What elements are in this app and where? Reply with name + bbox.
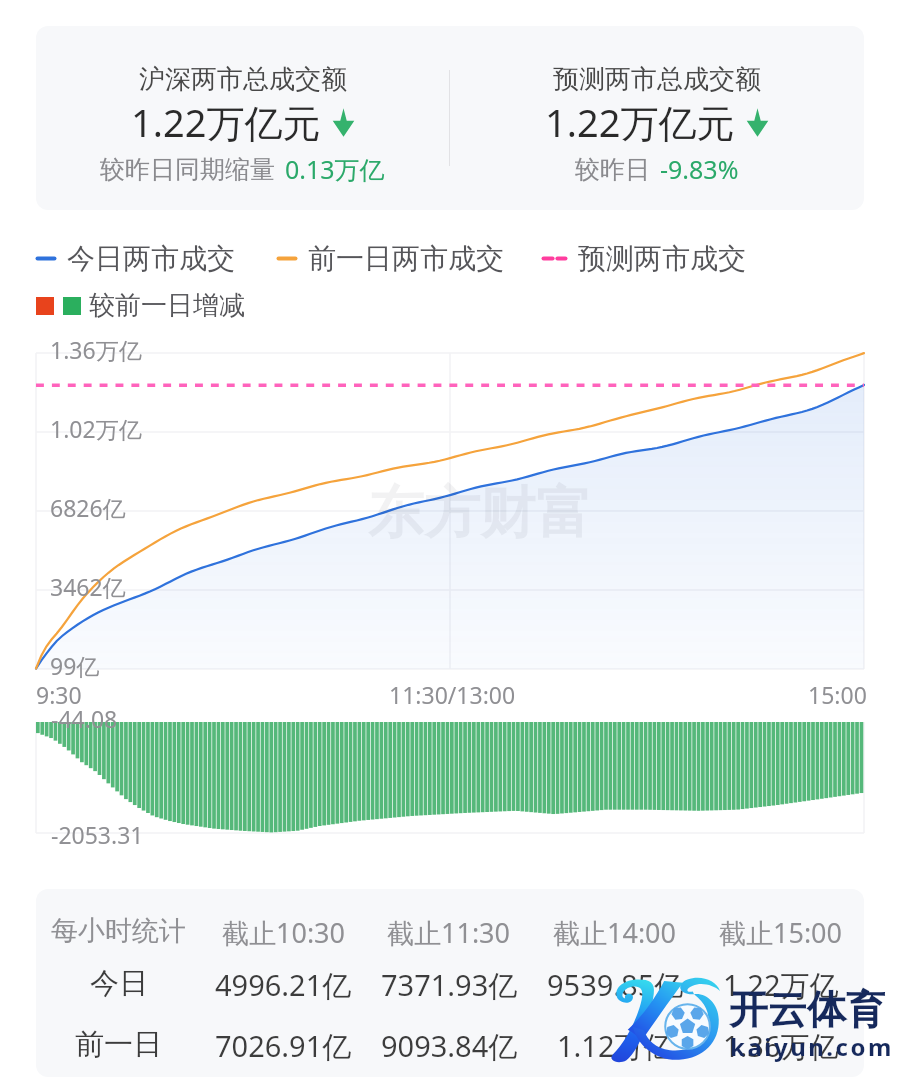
staticText: 前一日 (75, 1026, 162, 1063)
staticText: 3462亿 (50, 571, 126, 602)
button[interactable]: 沪深两市总成交额 (36, 26, 864, 210)
staticText: -2053.31 (51, 819, 144, 850)
staticText: 1.12万亿 (557, 1026, 673, 1066)
staticText: 1.22万亿元 (545, 96, 735, 148)
staticText: 东方财富 (368, 478, 592, 549)
button[interactable]: 前一日两市成交 (277, 241, 504, 276)
staticText: 沪深两市总成交额 (139, 63, 347, 96)
staticText: -9.83% (660, 152, 739, 186)
staticText: 99亿 (50, 650, 100, 681)
staticText: 4996.21亿 (215, 965, 352, 1005)
staticText: 截止15:00 (719, 914, 843, 951)
staticText: 6826亿 (50, 492, 126, 523)
staticText: kaiyun.com (730, 1030, 894, 1063)
staticText: 今日两市成交 (67, 241, 235, 276)
staticText: 较前一日增减 (89, 289, 245, 322)
staticText: 今日 (90, 965, 148, 1002)
staticText: 开云体育 (729, 985, 885, 1034)
staticText: 较昨日同期缩量 (100, 154, 275, 185)
button[interactable]: 较前一日增减 (36, 289, 245, 322)
button[interactable]: 预测两市成交 (542, 241, 746, 276)
staticText: 9:30 (36, 679, 82, 710)
staticText: 截止14:00 (553, 914, 677, 951)
staticText: 截止11:30 (387, 914, 511, 951)
staticText: 每小时统计 (51, 914, 186, 948)
staticText: 1.36万亿 (50, 334, 142, 365)
staticText: 截止10:30 (222, 914, 346, 951)
button[interactable]: 今日两市成交 (36, 241, 235, 276)
staticText: 15:00 (808, 679, 867, 710)
staticText: 预测两市成交 (578, 241, 746, 276)
staticText: 1.02万亿 (50, 413, 142, 444)
staticText: -44.08 (51, 703, 118, 734)
staticText: 11:30/13:00 (389, 679, 516, 710)
button[interactable]: 每小时统计 (36, 889, 864, 1077)
staticText: 7026.91亿 (215, 1026, 352, 1066)
staticText: 0.13万亿 (285, 152, 385, 186)
staticText: 较昨日 (575, 154, 650, 185)
staticText: 1.22万亿 (723, 965, 839, 1005)
staticText: 1.36万亿 (723, 1026, 839, 1066)
staticText: 1.22万亿元 (131, 96, 321, 148)
staticText: 7371.93亿 (381, 965, 518, 1005)
staticText: 预测两市总成交额 (553, 63, 761, 96)
staticText: 9539.85亿 (547, 965, 684, 1005)
staticText: 前一日两市成交 (308, 241, 504, 276)
staticText: 9093.84亿 (381, 1026, 518, 1066)
